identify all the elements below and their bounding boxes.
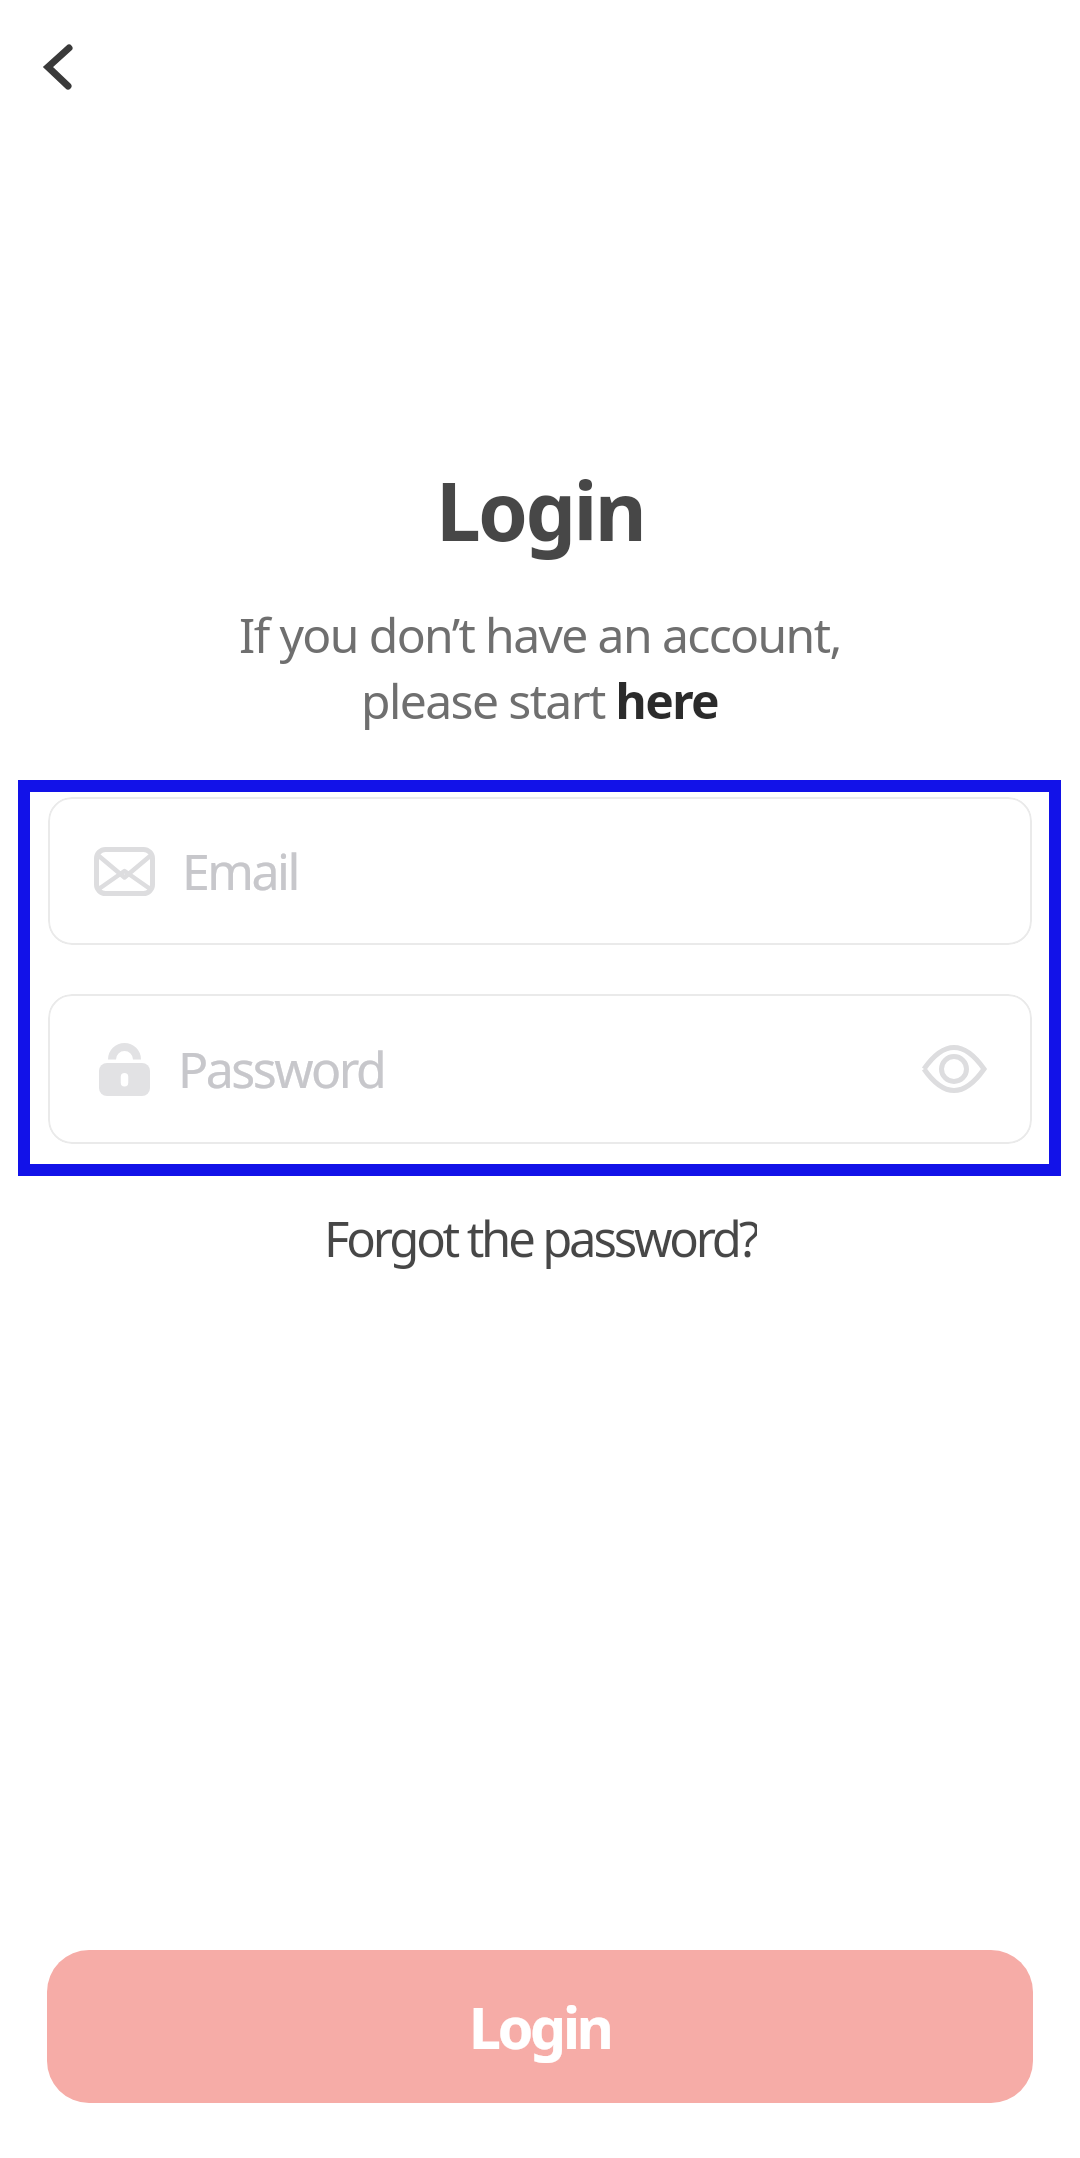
- staticText: Login: [469, 1988, 611, 2066]
- staticText: please start here: [361, 668, 719, 733]
- button[interactable]: Forgot the password?: [0, 1205, 1080, 1271]
- button[interactable]: Password: [48, 994, 1032, 1144]
- staticText: Email: [182, 837, 298, 905]
- button[interactable]: Login: [47, 1950, 1033, 2103]
- button[interactable]: [28, 26, 108, 106]
- staticText: Forgot the password?: [324, 1205, 757, 1271]
- button[interactable]: Email: [48, 797, 1032, 945]
- staticText: If you don’t have an account,: [239, 602, 841, 667]
- staticText: Login: [436, 455, 645, 564]
- staticText: Password: [178, 1035, 385, 1103]
